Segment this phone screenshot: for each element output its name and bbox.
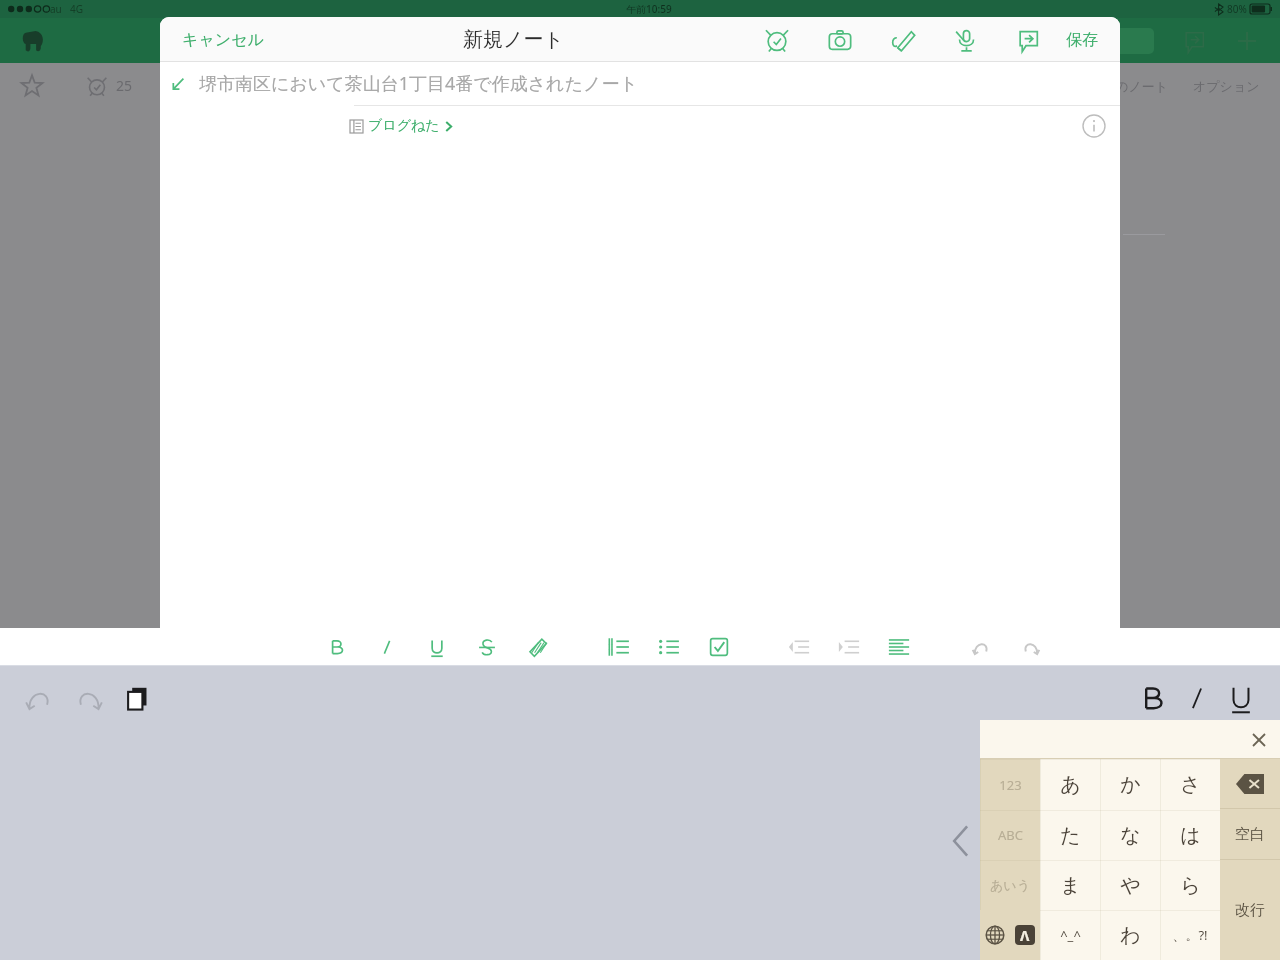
button[interactable]: 123 [980, 759, 1040, 810]
staticText: わ [1120, 923, 1141, 948]
button[interactable]: Close [1244, 725, 1274, 755]
button[interactable]: Camera [823, 23, 857, 57]
button[interactable]: Info [1082, 114, 1106, 138]
staticText: オプション [1193, 78, 1260, 94]
button[interactable]: Redo [1016, 632, 1046, 662]
button[interactable]: Italic [372, 632, 402, 662]
button[interactable] [1136, 681, 1170, 715]
button[interactable]: Audio [949, 23, 983, 57]
button[interactable]: は [1160, 810, 1220, 860]
staticText: ABC [998, 826, 1023, 844]
button[interactable]: ま [1040, 860, 1100, 910]
button[interactable]: キャンセル [178, 26, 268, 54]
button[interactable]: Checklist [704, 632, 734, 662]
staticText: ブログねた [368, 117, 440, 135]
button[interactable]: 空白 [1220, 809, 1280, 859]
button[interactable]: Paste [122, 681, 156, 715]
button[interactable]: Underline [422, 632, 452, 662]
staticText: さ [1180, 772, 1201, 797]
staticText: 80% [1227, 2, 1247, 16]
staticText: あいう [990, 877, 1030, 893]
button[interactable]: Collapse keyboard [944, 818, 978, 864]
staticText: 改行 [1235, 901, 1265, 920]
button[interactable]: ブログねた [350, 113, 453, 139]
button[interactable]: あいう [980, 860, 1040, 910]
staticText: 、。?! [1172, 926, 1208, 944]
staticText: ま [1060, 873, 1081, 898]
button[interactable]: Handwriting [886, 23, 920, 57]
button[interactable]: Highlight [522, 632, 552, 662]
staticText: キャンセル [182, 30, 264, 50]
staticText: ^_^ [1060, 926, 1081, 944]
button[interactable]: Undo [22, 681, 56, 715]
button[interactable]: Numbered list [604, 632, 634, 662]
button[interactable]: 堺市南区において茶山台1丁目4番で作成されたノート [160, 62, 1120, 105]
button[interactable]: Reminder [760, 23, 794, 57]
button[interactable]: Bulleted list [654, 632, 684, 662]
staticText: 4G [70, 2, 83, 16]
button[interactable]: ABC [980, 810, 1040, 860]
button[interactable]: Undo [966, 632, 996, 662]
button[interactable]: Keyboard switch [980, 910, 1010, 960]
button[interactable]: な [1100, 810, 1160, 860]
button[interactable] [954, 28, 1154, 54]
button[interactable] [1180, 681, 1214, 715]
button[interactable]: た [1040, 810, 1100, 860]
button[interactable]: Bold [322, 632, 352, 662]
button[interactable]: あ [1040, 759, 1100, 810]
staticText: 25 [116, 76, 133, 95]
staticText: 123 [999, 776, 1022, 794]
button[interactable] [1224, 681, 1258, 715]
staticText: 68 個のノート [1084, 77, 1169, 95]
staticText: 新規ノート [463, 27, 564, 52]
staticText: や [1120, 873, 1141, 898]
button[interactable]: ATOK [1010, 910, 1040, 960]
button[interactable]: Align [884, 632, 914, 662]
staticText: た [1060, 823, 1081, 848]
button[interactable]: ^_^ [1040, 910, 1100, 960]
staticText: 堺市南区において茶山台1丁目4番で作成されたノート [199, 71, 638, 96]
button[interactable]: Strikethrough [472, 632, 502, 662]
staticText: 保存 [1066, 30, 1098, 50]
button[interactable]: Share [1012, 23, 1046, 57]
staticText: Λ [1020, 926, 1030, 945]
button[interactable]: Redo [72, 681, 106, 715]
button[interactable]: Delete [1220, 759, 1280, 808]
staticText: 空白 [1235, 825, 1265, 844]
button[interactable]: ら [1160, 860, 1220, 910]
staticText: ら [1180, 873, 1201, 898]
button[interactable]: や [1100, 860, 1160, 910]
button[interactable]: か [1100, 759, 1160, 810]
button[interactable]: Indent [834, 632, 864, 662]
button[interactable]: New note [1234, 28, 1260, 54]
button[interactable]: 保存 [1060, 24, 1104, 56]
staticText: au [50, 2, 62, 16]
button[interactable] [20, 28, 46, 54]
button[interactable]: わ [1100, 910, 1160, 960]
staticText: か [1120, 772, 1141, 797]
button[interactable]: さ [1160, 759, 1220, 810]
button[interactable]: Share [1182, 28, 1208, 54]
staticText: は [1180, 823, 1201, 848]
button[interactable]: 、。?! [1160, 910, 1220, 960]
staticText: あ [1060, 772, 1081, 797]
staticText: な [1120, 823, 1141, 848]
button[interactable]: Outdent [784, 632, 814, 662]
staticText: 午前10:59 [626, 2, 672, 16]
button[interactable]: 改行 [1220, 860, 1280, 960]
